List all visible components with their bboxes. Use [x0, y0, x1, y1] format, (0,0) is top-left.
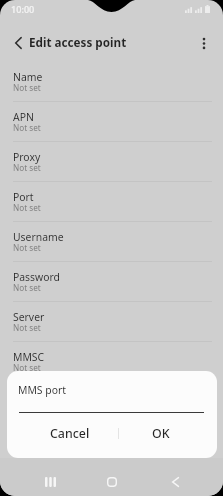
staticText: Not set	[13, 202, 41, 213]
staticText: Not set	[13, 282, 41, 293]
button[interactable]: Name	[0, 62, 223, 102]
button[interactable]: Home	[97, 470, 127, 494]
staticText: Not set	[13, 362, 41, 373]
staticText: Proxy	[13, 150, 41, 164]
staticText: APN	[13, 110, 34, 124]
button[interactable]: Proxy	[0, 142, 223, 182]
button[interactable]: More options	[192, 31, 216, 55]
staticText: Not set	[13, 322, 41, 333]
button[interactable]: Recents	[35, 470, 65, 494]
staticText: Not set	[13, 122, 41, 133]
button[interactable]: APN	[0, 102, 223, 142]
staticText: MMS port	[18, 383, 66, 397]
staticText: Cancel	[50, 425, 90, 442]
staticText: Username	[13, 230, 64, 244]
button[interactable]: Cancel	[21, 419, 118, 447]
staticText: Password	[13, 270, 60, 284]
button[interactable]: Back	[6, 31, 30, 55]
staticText: Edit access point	[29, 34, 127, 50]
staticText: 10:00	[11, 3, 35, 15]
button[interactable]: OK	[119, 419, 203, 447]
button[interactable]: Server	[0, 302, 223, 342]
button[interactable]: Back	[160, 470, 190, 494]
staticText: Server	[13, 310, 45, 324]
staticText: MMSC	[13, 350, 45, 364]
staticText: OK	[152, 425, 170, 442]
button[interactable]: Username	[0, 222, 223, 262]
staticText: Not set	[13, 162, 41, 173]
button[interactable]: MMSC	[0, 342, 223, 382]
staticText: Not set	[13, 82, 41, 93]
staticText: Name	[13, 70, 43, 84]
staticText: Not set	[13, 242, 41, 253]
button[interactable]: Password	[0, 262, 223, 302]
button[interactable]: Port	[0, 182, 223, 222]
staticText: Port	[13, 190, 34, 204]
